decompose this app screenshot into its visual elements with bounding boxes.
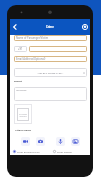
staticText: Name of Passenger/Victim [16,36,49,40]
staticText: --SELECT CRIME TYPE-- [37,71,64,74]
button[interactable]: Record audio [56,137,65,146]
button[interactable]: Email Address(Optional) [14,56,87,62]
staticText: +91 [18,47,23,51]
button[interactable]: Pick image [71,137,80,146]
staticText: Message [16,88,27,91]
button[interactable]: +91 [14,46,27,52]
staticText: Report [14,79,23,82]
staticText: Attach Media [15,128,31,131]
staticText: no media selected [19,113,27,117]
button[interactable]: Name of Passenger/Victim [14,35,87,41]
staticText: Crime [46,25,54,29]
button[interactable] [29,46,87,52]
button[interactable]: no media selected [14,104,32,124]
staticText: From Running Trail [17,150,40,153]
button[interactable]: From Running Trail [13,148,40,154]
staticText: From Station [57,150,73,153]
button[interactable]: Account [80,22,90,32]
button[interactable]: --SELECT CRIME TYPE-- [14,68,87,77]
button[interactable]: Message [14,87,87,101]
button[interactable]: Take photo [36,137,45,146]
button[interactable]: Back [10,22,20,32]
button[interactable]: From Station [53,148,73,154]
staticText: Email Address(Optional) [16,57,46,61]
button[interactable]: Record video [21,137,30,146]
